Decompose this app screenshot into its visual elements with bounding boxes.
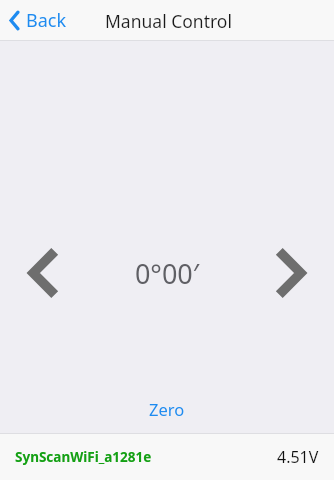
button[interactable]: Zero bbox=[131, 392, 203, 426]
button[interactable]: Back bbox=[7, 4, 69, 37]
staticText: Zero bbox=[149, 398, 185, 420]
button[interactable]: Move left bbox=[20, 238, 68, 308]
button[interactable]: Move right bbox=[266, 238, 314, 308]
staticText: 0°00′ bbox=[68, 255, 266, 292]
staticText: Back bbox=[26, 8, 67, 33]
staticText: 4.51V bbox=[277, 446, 319, 468]
staticText: SynScanWiFi_a1281e bbox=[15, 448, 152, 466]
staticText: Manual Control bbox=[105, 9, 232, 33]
